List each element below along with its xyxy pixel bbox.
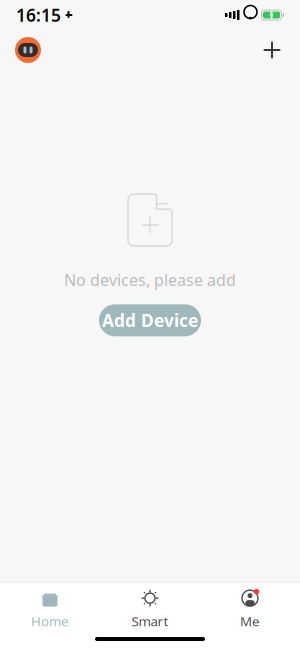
button[interactable]: Me xyxy=(200,587,300,631)
button[interactable]: Add xyxy=(250,32,294,68)
button[interactable]: Home profile xyxy=(6,32,50,68)
staticText: 16:15 xyxy=(16,3,61,26)
staticText: Home xyxy=(31,612,69,630)
staticText: Add Device xyxy=(102,309,198,332)
button[interactable]: Smart xyxy=(100,587,200,631)
staticText: Me xyxy=(240,612,260,630)
staticText: No devices, please add xyxy=(64,269,236,290)
button[interactable]: Home xyxy=(0,587,100,631)
button[interactable]: Add Device xyxy=(99,304,201,336)
staticText: Smart xyxy=(131,612,168,630)
